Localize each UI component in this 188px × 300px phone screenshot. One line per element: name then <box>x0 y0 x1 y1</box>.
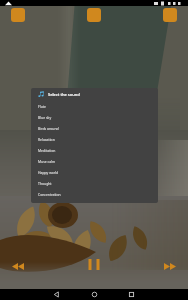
staticText: Birds around <box>38 126 59 131</box>
button[interactable]: Meditation <box>31 145 158 156</box>
button[interactable]: Relaxation <box>31 134 158 145</box>
button[interactable]: Thought <box>31 178 158 189</box>
staticText: Flute <box>38 104 46 109</box>
button[interactable]: Birds around <box>31 123 158 134</box>
staticText: Select the sound <box>48 92 80 97</box>
button[interactable]: Blue sky <box>31 112 158 123</box>
button[interactable]: Back <box>52 290 61 299</box>
staticText: Muse calm <box>38 159 56 164</box>
button[interactable]: App shortcut <box>87 8 101 22</box>
button[interactable]: Recents <box>127 290 136 299</box>
button[interactable]: Previous <box>8 255 28 275</box>
staticText: Relaxation <box>38 137 55 142</box>
button[interactable]: Concentration <box>31 189 158 200</box>
button[interactable]: App shortcut <box>11 8 25 22</box>
button[interactable]: Home <box>90 290 99 299</box>
button[interactable]: Muse calm <box>31 156 158 167</box>
staticText: Thought <box>38 181 52 186</box>
button[interactable]: Pause <box>84 255 104 275</box>
button[interactable]: Flute <box>31 101 158 112</box>
staticText: Concentration <box>38 192 61 197</box>
button[interactable]: Next <box>160 255 180 275</box>
staticText: Happy world <box>38 170 59 175</box>
staticText: Blue sky <box>38 115 52 120</box>
staticText: Meditation <box>38 148 56 153</box>
button[interactable]: App shortcut <box>163 8 177 22</box>
button[interactable]: Happy world <box>31 167 158 178</box>
